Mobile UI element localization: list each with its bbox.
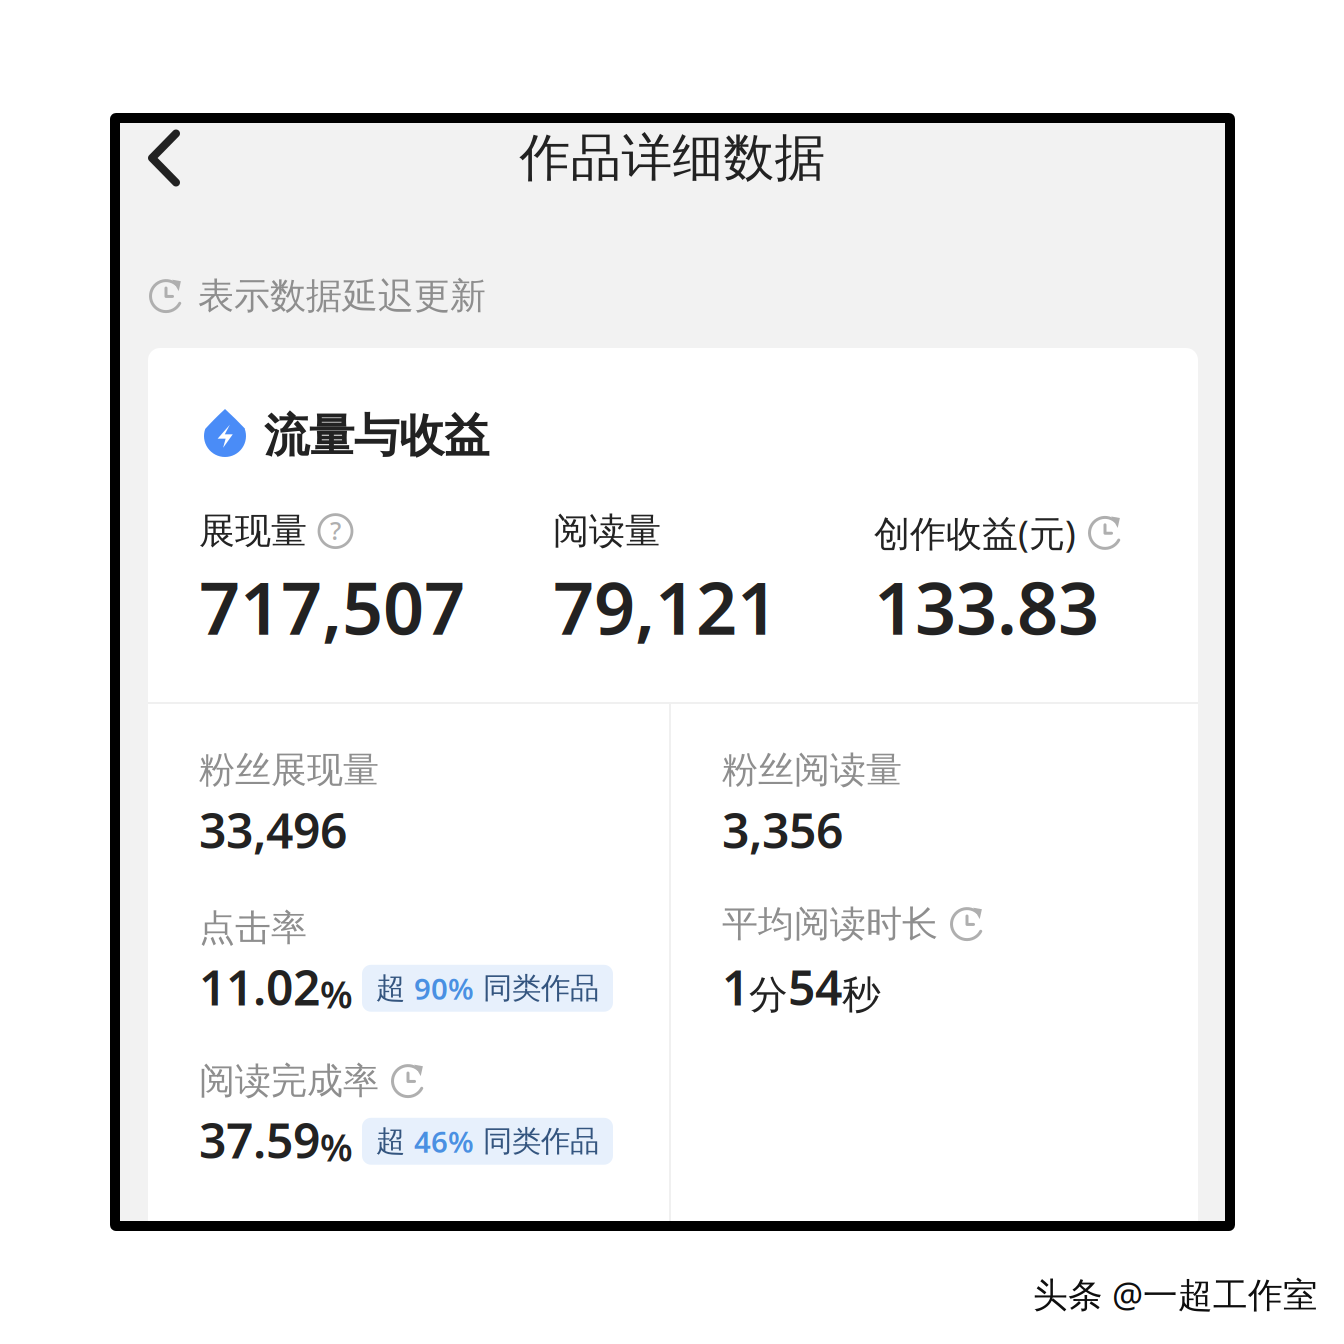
staticText: 同类作品 (474, 1123, 599, 1159)
staticText: 平均阅读时长 (722, 902, 938, 946)
staticText: 90% (414, 969, 474, 1008)
staticText: 创作收益(元) (874, 509, 1076, 557)
staticText: 头条 @一超工作室 (1033, 1271, 1318, 1317)
staticText: 79,121 (553, 559, 778, 655)
button[interactable]: 展现量说明 (319, 515, 352, 548)
staticText: 流量与收益 (264, 408, 489, 464)
staticText: 1 (722, 955, 749, 1019)
staticText: 阅读量 (553, 509, 661, 553)
staticText: 点击率 (199, 906, 307, 950)
button[interactable]: 数据延迟更新说明 (950, 907, 984, 941)
staticText: % (320, 969, 353, 1019)
staticText: 超 (376, 1123, 414, 1159)
staticText: 717,507 (199, 559, 465, 655)
staticText: ? (330, 513, 341, 547)
button[interactable]: 数据延迟更新说明 (391, 1064, 425, 1098)
staticText: 粉丝阅读量 (722, 748, 902, 792)
staticText: 46% (414, 1122, 474, 1161)
staticText: 3,356 (722, 798, 843, 862)
button[interactable]: 返回 (120, 116, 208, 200)
staticText: 33,496 (199, 798, 347, 862)
staticText: 展现量 (199, 509, 307, 553)
staticText: % (320, 1122, 353, 1172)
button[interactable]: 数据延迟更新说明 (1088, 516, 1122, 550)
staticText: 133.83 (874, 559, 1099, 655)
staticText: 同类作品 (474, 970, 599, 1006)
staticText: 37.59 (199, 1108, 320, 1172)
staticText: 超 (376, 970, 414, 1006)
staticText: 分 (749, 971, 788, 1019)
staticText: 阅读完成率 (199, 1059, 379, 1103)
staticText: 作品详细数据 (519, 127, 825, 189)
staticText: 表示数据延迟更新 (198, 274, 486, 318)
staticText: 11.02 (199, 955, 320, 1019)
staticText: 秒 (842, 971, 881, 1019)
staticText: 54 (788, 955, 842, 1019)
staticText: 粉丝展现量 (199, 748, 379, 792)
